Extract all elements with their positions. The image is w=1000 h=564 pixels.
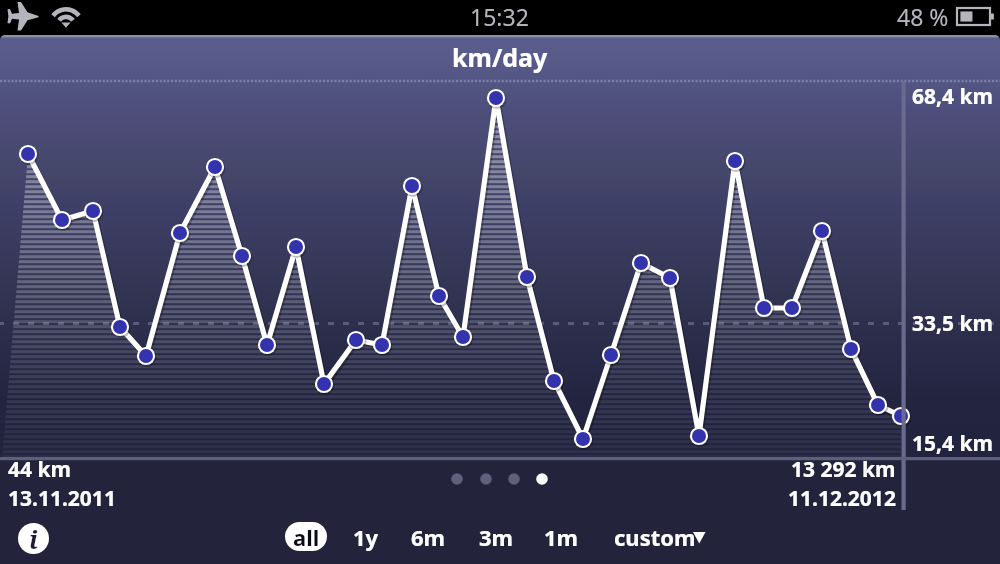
staticText: 13 292 km — [791, 455, 896, 484]
staticText: 1m — [544, 522, 579, 551]
staticText: 33,5 km — [912, 309, 993, 338]
staticText: 44 km — [8, 455, 71, 484]
button[interactable]: 3m — [475, 522, 517, 551]
staticText: 1y — [353, 522, 379, 551]
button[interactable]: 1m — [540, 522, 582, 551]
staticText: 48 % — [897, 1, 949, 32]
button[interactable]: custom — [607, 522, 712, 551]
staticText: 15,4 km — [912, 429, 993, 458]
staticText: 11.12.2012 — [788, 484, 896, 513]
button[interactable]: 6m — [407, 522, 449, 551]
staticText: 15:32 — [470, 1, 529, 32]
staticText: all — [293, 522, 320, 551]
button[interactable]: 1y — [345, 522, 387, 551]
staticText: 3m — [479, 522, 514, 551]
button[interactable]: all — [285, 522, 327, 551]
staticText: km/day — [452, 40, 548, 74]
staticText: 6m — [411, 522, 446, 551]
staticText: i — [29, 523, 38, 553]
staticText: custom — [614, 522, 696, 551]
staticText: 68,4 km — [912, 82, 993, 111]
staticText: 13.11.2011 — [8, 484, 116, 513]
button[interactable]: Info — [18, 523, 49, 554]
